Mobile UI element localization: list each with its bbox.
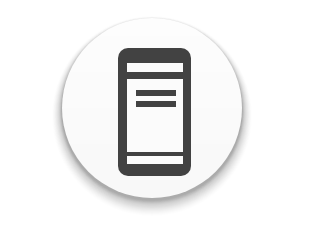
- button[interactable]: Device screenshot: [0, 0, 319, 241]
